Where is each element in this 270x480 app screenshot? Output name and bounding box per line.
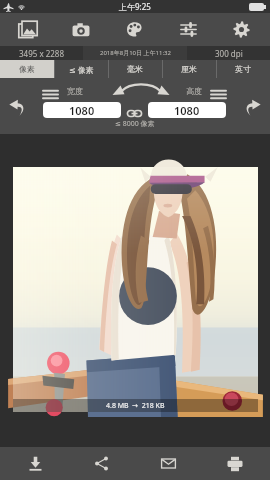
staticText: ≤ 8000 像素 — [115, 119, 155, 129]
button[interactable]: Email — [142, 447, 194, 480]
button[interactable]: 英寸 — [216, 60, 270, 78]
button[interactable]: Adjust — [168, 13, 208, 46]
staticText: 毫米 — [127, 64, 143, 74]
staticText: 英寸 — [235, 64, 251, 74]
staticText: 像素 — [19, 64, 35, 74]
button[interactable]: Settings — [221, 13, 261, 46]
staticText: 2018年8月10日 上午11:32 — [100, 49, 171, 57]
staticText: 3495 x 2288 — [19, 48, 64, 59]
button[interactable]: Camera — [61, 13, 101, 46]
staticText: 高度 — [186, 86, 202, 96]
button[interactable]: Download — [9, 447, 61, 480]
button[interactable]: Undo — [5, 96, 30, 118]
button[interactable]: ≤ 像素 — [54, 60, 108, 78]
staticText: 1080 — [174, 103, 200, 118]
button[interactable]: Link dimensions — [123, 102, 146, 118]
button[interactable]: Palette — [114, 13, 154, 46]
button[interactable]: 毫米 — [108, 60, 162, 78]
button[interactable]: 厘米 — [162, 60, 216, 78]
staticText: 厘米 — [181, 64, 197, 74]
button[interactable]: 1080 — [43, 102, 121, 118]
button[interactable]: Gallery — [8, 13, 48, 46]
button[interactable]: 像素 — [0, 60, 54, 78]
button[interactable]: Print — [209, 447, 261, 480]
staticText: ≤ 像素 — [69, 64, 94, 75]
staticText: 1080 — [69, 103, 95, 118]
staticText: 宽度 — [67, 86, 83, 96]
button[interactable]: Share — [75, 447, 127, 480]
staticText: 上午9:25 — [119, 1, 151, 12]
staticText: 300 dpi — [215, 48, 243, 59]
staticText: 4.8 MB → 218 KB — [106, 401, 165, 411]
button[interactable]: Redo — [240, 96, 265, 118]
button[interactable]: 1080 — [148, 102, 226, 118]
